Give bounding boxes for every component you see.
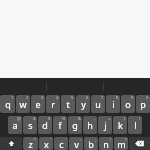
button[interactable]: q	[0, 95, 15, 113]
staticText: ?	[125, 137, 127, 142]
staticText: #	[33, 116, 36, 121]
staticText: :	[80, 137, 82, 142]
button[interactable]: c	[54, 137, 68, 150]
staticText: k	[118, 119, 123, 131]
staticText: q	[5, 98, 11, 110]
staticText: ;	[95, 137, 97, 142]
staticText: 2	[26, 95, 29, 100]
staticText: 9	[131, 95, 134, 100]
staticText: s	[28, 119, 33, 131]
staticText: @	[17, 116, 21, 121]
staticText: 7	[101, 95, 104, 100]
staticText: 5	[71, 95, 74, 100]
staticText: b	[88, 138, 94, 150]
button[interactable]: j	[98, 116, 112, 134]
staticText: u	[95, 98, 101, 110]
button[interactable]: e	[31, 95, 45, 113]
staticText: d	[42, 119, 48, 131]
staticText: i	[112, 98, 115, 110]
button[interactable]: s	[23, 116, 37, 134]
staticText: !	[110, 137, 112, 142]
staticText: f	[58, 119, 62, 131]
button[interactable]: f	[53, 116, 67, 134]
button[interactable]: r	[46, 95, 60, 113]
button[interactable]: Backspace	[129, 137, 150, 150]
button[interactable]: h	[83, 116, 97, 134]
staticText: z	[28, 138, 33, 150]
button[interactable]: a	[8, 116, 22, 134]
button[interactable]: m	[114, 137, 128, 150]
staticText: 3	[41, 95, 44, 100]
staticText: 1	[11, 95, 14, 100]
button[interactable]: Shift	[0, 137, 22, 150]
staticText: o	[125, 98, 131, 110]
button[interactable]: w	[16, 95, 30, 113]
staticText: 0	[146, 95, 149, 100]
button[interactable]: y	[76, 95, 90, 113]
staticText: n	[103, 138, 109, 150]
button[interactable]: t	[61, 95, 75, 113]
staticText: 4	[56, 95, 59, 100]
button[interactable]: p	[136, 95, 150, 113]
staticText: j	[104, 119, 107, 131]
button[interactable]: x	[39, 137, 53, 150]
button[interactable]: i	[106, 95, 120, 113]
button[interactable]: b	[84, 137, 98, 150]
button[interactable]: l	[128, 116, 142, 134]
staticText: m	[117, 138, 126, 150]
button[interactable]: k	[113, 116, 127, 134]
staticText: -	[94, 116, 96, 121]
button[interactable]: u	[91, 95, 105, 113]
button[interactable]: z	[23, 137, 38, 150]
button[interactable]: v	[69, 137, 83, 150]
staticText: w	[19, 98, 27, 110]
button[interactable]: g	[68, 116, 82, 134]
button[interactable]: d	[38, 116, 52, 134]
staticText: %	[62, 116, 66, 121]
staticText: p	[140, 98, 146, 110]
staticText: &	[78, 116, 81, 121]
staticText: r	[51, 98, 55, 110]
staticText: (	[124, 116, 126, 121]
staticText: 6	[86, 95, 89, 100]
staticText: "	[50, 137, 52, 142]
staticText: +	[108, 116, 111, 121]
staticText: x	[44, 138, 49, 150]
staticText: y	[81, 98, 86, 110]
staticText: v	[74, 138, 79, 150]
button[interactable]: o	[121, 95, 135, 113]
staticText: t	[66, 98, 70, 110]
staticText: h	[87, 119, 93, 131]
staticText: l	[134, 119, 137, 131]
button[interactable]: n	[99, 137, 113, 150]
staticText: e	[35, 98, 41, 110]
staticText: *	[34, 137, 37, 142]
staticText: c	[59, 138, 64, 150]
staticText: 8	[116, 95, 119, 100]
staticText: $	[48, 116, 51, 121]
staticText: )	[139, 116, 141, 121]
staticText: a	[12, 119, 18, 131]
staticText: g	[72, 119, 78, 131]
staticText: '	[66, 137, 67, 142]
